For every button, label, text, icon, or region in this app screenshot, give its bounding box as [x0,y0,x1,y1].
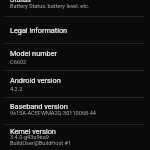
button[interactable]: Kernel version [0,125,150,150]
staticText: BuildUser@BuildHost #1 [10,140,72,147]
staticText: Model number [10,49,57,58]
staticText: Baseband version [10,102,68,111]
button[interactable]: Legal information [0,17,150,43]
button[interactable]: Android version [0,71,150,97]
button[interactable]: Model number [0,44,150,70]
staticText: Battery Status, battery level, etc. [10,3,90,10]
staticText: Status [10,0,31,4]
button[interactable]: Baseband version [0,98,150,124]
staticText: C6602 [10,59,27,66]
staticText: Legal information [10,26,68,35]
staticText: 9x15A-ACEFWMA2Q-30110068-44 [10,110,96,117]
staticText: 4.2.2 [10,86,23,93]
button[interactable]: Status [0,0,150,16]
staticText: Kernel version [10,127,56,136]
staticText: 3.4.0-g43a9ba9 [10,134,49,141]
staticText: Android version [10,76,61,85]
